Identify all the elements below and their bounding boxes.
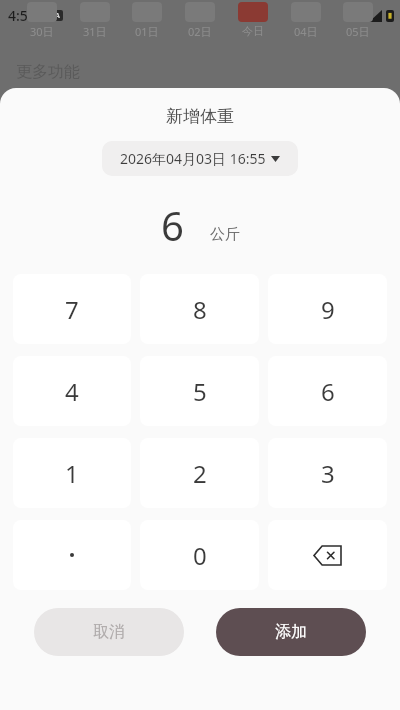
staticText: 04日 <box>294 24 318 39</box>
staticText: A <box>55 11 60 21</box>
staticText: 2 <box>193 457 207 490</box>
staticText: 02日 <box>188 24 212 39</box>
staticText: 8 <box>193 293 207 326</box>
staticText: 2026年04月03日 16:55 <box>120 149 266 168</box>
staticText: 6 <box>161 198 184 252</box>
staticText: 今日 <box>242 24 264 38</box>
button[interactable]: 5 <box>140 356 259 426</box>
button[interactable]: Backspace <box>268 520 387 590</box>
staticText: 取消 <box>93 622 125 642</box>
staticText: 新增体重 <box>166 106 234 127</box>
staticText: 添加 <box>275 622 307 642</box>
button[interactable]: 取消 <box>34 608 184 656</box>
staticText: 更多功能 <box>16 62 80 82</box>
staticText: 31日 <box>83 24 107 39</box>
button[interactable] <box>13 520 131 590</box>
button[interactable]: 4 <box>13 356 131 426</box>
staticText: 4 <box>65 375 79 408</box>
button[interactable]: 2026年04月03日 16:55 <box>102 141 298 176</box>
staticText: 05日 <box>346 24 370 39</box>
staticText: 7 <box>65 293 79 326</box>
button[interactable]: 3 <box>268 438 387 508</box>
button[interactable]: 添加 <box>216 608 366 656</box>
button[interactable]: 7 <box>13 274 131 344</box>
button[interactable]: 9 <box>268 274 387 344</box>
staticText: 5 <box>193 375 207 408</box>
staticText: 9 <box>321 293 335 326</box>
button[interactable]: 2 <box>140 438 259 508</box>
button[interactable]: 0 <box>140 520 259 590</box>
button[interactable]: 1 <box>13 438 131 508</box>
staticText: 30日 <box>30 24 54 39</box>
button[interactable]: 8 <box>140 274 259 344</box>
staticText: 0 <box>193 539 207 572</box>
staticText: 公斤 <box>210 225 240 244</box>
staticText: 6 <box>321 375 335 408</box>
staticText: 4:56 <box>8 6 36 25</box>
staticText: 1 <box>65 457 79 490</box>
staticText: 3 <box>321 457 335 490</box>
button[interactable]: 6 <box>268 356 387 426</box>
staticText: 01日 <box>135 24 159 39</box>
